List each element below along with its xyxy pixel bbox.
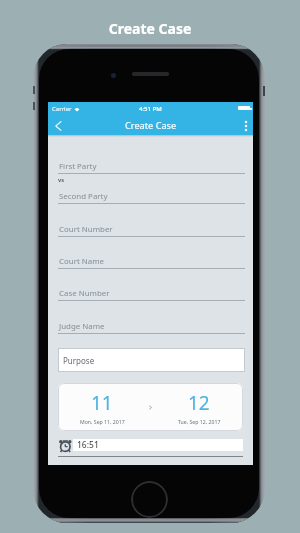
button[interactable]: Case Number — [58, 288, 245, 302]
staticText: Case Number — [59, 288, 110, 299]
button[interactable]: Back — [49, 116, 67, 135]
button[interactable]: Judge Name — [58, 321, 245, 335]
staticText: First Party — [59, 161, 97, 172]
button[interactable]: 16:51 — [58, 434, 253, 454]
staticText: Create Case — [125, 119, 177, 132]
staticText: 11 — [91, 390, 113, 416]
button[interactable]: Court Number — [58, 224, 245, 238]
staticText: vs — [58, 176, 65, 184]
staticText: Judge Name — [59, 321, 105, 332]
staticText: Court Name — [59, 256, 105, 267]
staticText: Second Party — [59, 191, 108, 202]
staticText: Mon, Sep 11, 2017 — [80, 418, 125, 425]
staticText: 16:51 — [77, 439, 99, 451]
staticText: Court Number — [59, 224, 113, 235]
staticText: Carrier — [52, 105, 72, 113]
staticText: Create Case — [0, 19, 300, 38]
staticText: Tue, Sep 12, 2017 — [178, 418, 221, 425]
button[interactable]: 11 — [58, 383, 243, 431]
button[interactable]: First Party — [58, 161, 245, 175]
button[interactable]: More options — [239, 116, 253, 135]
staticText: 12 — [188, 390, 210, 416]
staticText: Purpose — [63, 355, 95, 366]
button[interactable]: Court Name — [58, 256, 245, 270]
staticText: 4:51 PM — [139, 105, 162, 113]
button[interactable]: Purpose — [58, 348, 245, 372]
button[interactable]: Second Party — [58, 191, 245, 205]
